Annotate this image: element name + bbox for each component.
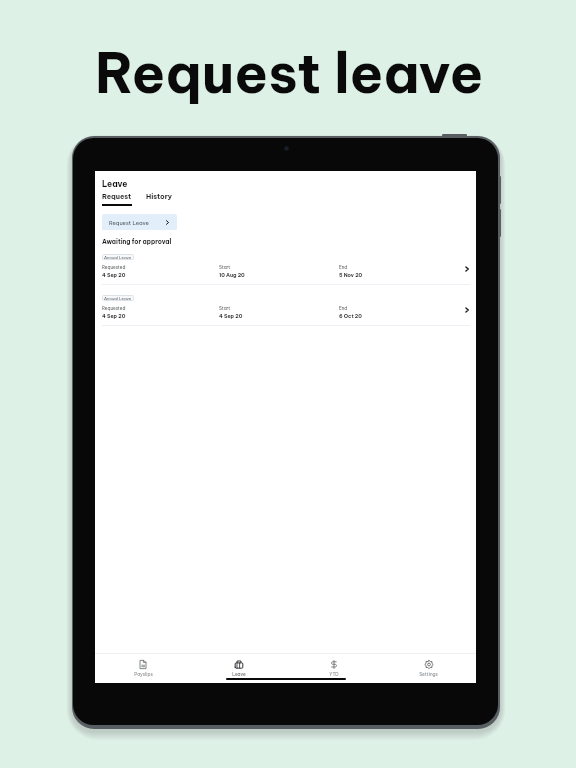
staticText: Request Leave: [109, 219, 149, 226]
button[interactable]: YTD: [286, 660, 381, 677]
staticText: Start: [219, 264, 231, 270]
button[interactable]: Payslips: [95, 660, 191, 677]
button[interactable]: Request: [102, 192, 132, 206]
button[interactable]: Annual Leave: [95, 244, 476, 285]
staticText: 4 Sep 20: [102, 313, 126, 320]
staticText: Leave: [102, 179, 128, 189]
staticText: 4 Sep 20: [219, 313, 243, 320]
staticText: 10 Aug 20: [219, 272, 245, 279]
button[interactable]: Settings: [381, 660, 476, 677]
other: Open request leave: [165, 220, 170, 225]
staticText: Settings: [419, 671, 438, 677]
other: View leave request details: [464, 307, 470, 313]
staticText: History: [146, 192, 173, 201]
staticText: 5 Nov 20: [339, 272, 363, 279]
button[interactable]: Request Leave: [102, 214, 177, 230]
staticText: Start: [219, 305, 231, 311]
staticText: 6 Oct 20: [339, 313, 362, 320]
staticText: End: [339, 264, 348, 270]
staticText: Annual Leave: [104, 255, 132, 260]
button[interactable]: History: [146, 192, 173, 206]
staticText: Requested: [102, 264, 126, 270]
staticText: Request: [102, 192, 132, 201]
button[interactable]: Leave: [191, 660, 286, 677]
staticText: 4 Sep 20: [102, 272, 126, 279]
staticText: Requested: [102, 305, 126, 311]
staticText: Awaiting for approval: [102, 238, 172, 246]
staticText: Payslips: [134, 671, 153, 677]
staticText: YTD: [329, 671, 339, 677]
other: View leave request details: [464, 266, 470, 272]
staticText: End: [339, 305, 348, 311]
staticText: Request leave: [95, 38, 484, 108]
button[interactable]: Annual Leave: [95, 285, 476, 326]
staticText: Annual Leave: [104, 296, 132, 301]
staticText: Leave: [232, 671, 246, 677]
